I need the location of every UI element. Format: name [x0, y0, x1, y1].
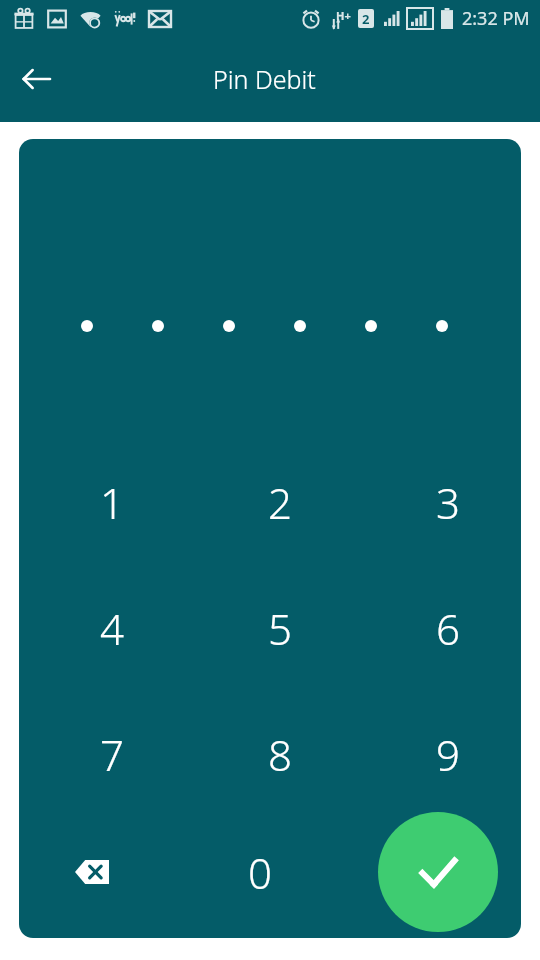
staticText: 4: [100, 600, 124, 657]
staticText: 3: [436, 474, 460, 531]
button[interactable]: 6: [408, 595, 488, 661]
staticText: 2: [362, 10, 370, 28]
staticText: 8: [268, 726, 292, 783]
button[interactable]: Backspace: [62, 842, 122, 902]
staticText: H+: [336, 8, 351, 23]
staticText: Pin Debit: [213, 62, 316, 96]
staticText: 0: [248, 844, 272, 901]
button[interactable]: 3: [408, 469, 488, 535]
button[interactable]: 0: [230, 842, 290, 902]
staticText: 2: [268, 474, 292, 531]
button[interactable]: 9: [408, 721, 488, 787]
staticText: 6: [436, 600, 460, 657]
staticText: 1: [100, 474, 124, 531]
button[interactable]: Confirm: [378, 812, 498, 932]
button[interactable]: Back: [12, 55, 60, 103]
staticText: 2:32 PM: [462, 6, 530, 31]
button[interactable]: 8: [240, 721, 320, 787]
staticText: 7: [100, 726, 124, 783]
button[interactable]: 5: [240, 595, 320, 661]
button[interactable]: 4: [72, 595, 152, 661]
button[interactable]: 1: [72, 469, 152, 535]
button[interactable]: 2: [240, 469, 320, 535]
button[interactable]: 7: [72, 721, 152, 787]
staticText: 9: [436, 726, 460, 783]
staticText: 5: [268, 600, 292, 657]
